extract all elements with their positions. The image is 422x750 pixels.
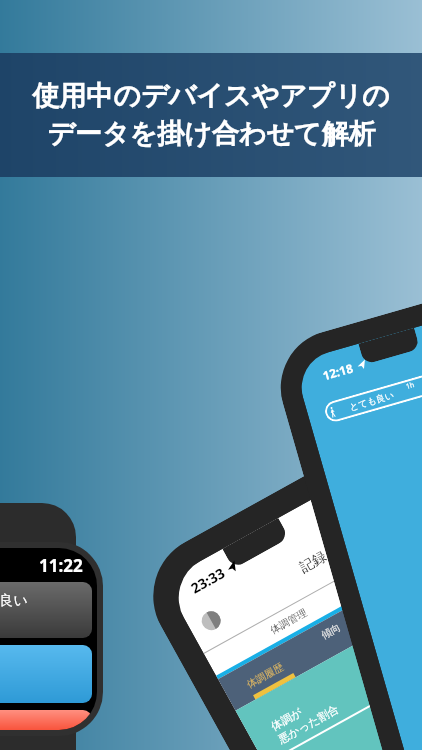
staticText: 体調管理	[268, 606, 309, 637]
staticText: 体調履歴	[244, 660, 286, 691]
staticText: 体調が	[268, 704, 305, 733]
staticText: 12:18	[321, 359, 355, 383]
staticText: 記録	[297, 548, 330, 577]
staticText: データを掛け合わせて解析	[47, 117, 376, 151]
staticText: 悪かった割合	[276, 702, 341, 746]
staticText: 11:22	[39, 554, 83, 577]
staticText: 使用中のデバイスやアプリの	[32, 79, 390, 113]
staticText: 調 とても良い	[0, 590, 28, 609]
staticText: 傾向	[319, 621, 343, 642]
staticText: とても良い	[348, 389, 395, 412]
staticText: 23:33	[187, 563, 228, 597]
staticText: 1h	[405, 380, 416, 392]
